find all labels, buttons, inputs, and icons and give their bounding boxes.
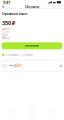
staticText: Оплата: [25, 4, 39, 9]
staticText: Оплатить: [25, 44, 39, 47]
button[interactable]: Спишется 15 июня: [2, 49, 62, 60]
staticText: Июнь: [2, 36, 9, 40]
staticText: 350 ₽: [2, 19, 15, 27]
button[interactable]: Оплатить: [2, 42, 62, 49]
button[interactable]: •••• 4321: [2, 60, 62, 71]
staticText: Сро: [2, 33, 8, 37]
staticText: 15 и: [2, 30, 9, 33]
staticText: •••• 4321: [9, 64, 22, 67]
button[interactable]: Back: [1, 4, 7, 10]
staticText: 9:41: [3, 0, 10, 5]
staticText: Страховой взнос: [2, 12, 27, 16]
staticText: Спишется 15 июня: [6, 53, 33, 56]
staticText: Дата сп: [2, 27, 11, 30]
